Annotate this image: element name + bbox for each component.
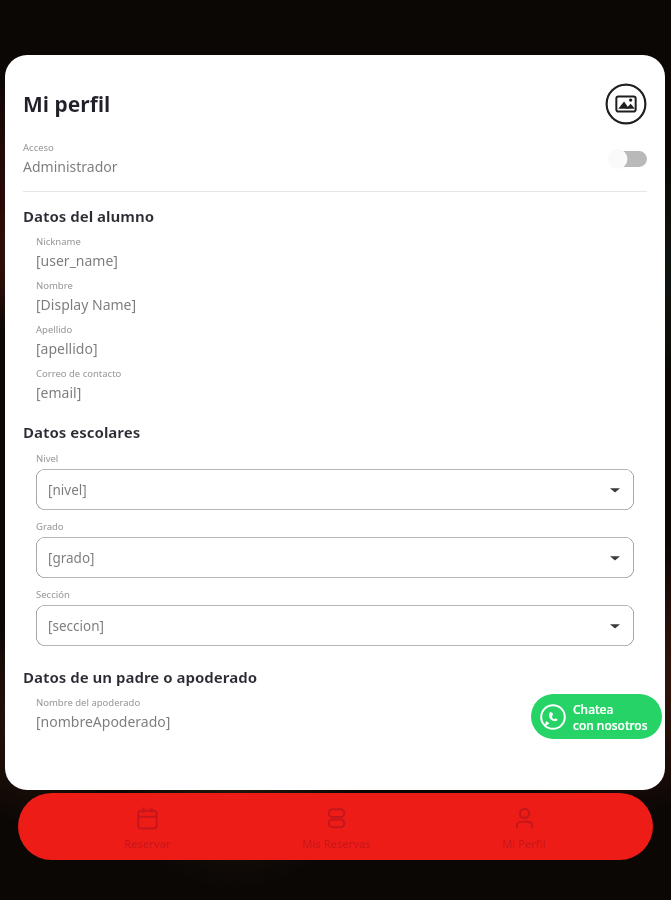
staticText: con nosotros <box>573 717 648 733</box>
button[interactable]: Cambiar foto de perfil <box>605 83 647 125</box>
staticText: Datos del alumno <box>23 206 155 226</box>
button[interactable]: Reservar <box>87 801 207 857</box>
staticText: Nickname <box>36 235 81 248</box>
button[interactable]: Acceso administrador <box>607 148 647 170</box>
staticText: [email] <box>36 383 82 402</box>
button[interactable]: Mi Perfil <box>464 801 584 857</box>
button[interactable]: [nivel] <box>36 469 634 510</box>
staticText: Chatea <box>573 701 614 717</box>
staticText: Apellido <box>36 323 73 336</box>
staticText: Mi Perfil <box>502 836 546 851</box>
staticText: Administrador <box>23 157 118 176</box>
staticText: Acceso <box>23 141 54 154</box>
staticText: Reservar <box>124 836 171 851</box>
staticText: Mi perfil <box>23 90 605 119</box>
staticText: Nivel <box>36 452 59 465</box>
staticText: Nombre del apoderado <box>36 696 141 709</box>
staticText: Datos escolares <box>23 422 141 442</box>
button[interactable]: Mis Reservas <box>276 801 396 857</box>
staticText: [nombreApoderado] <box>36 712 171 731</box>
button[interactable]: [grado] <box>36 537 634 578</box>
staticText: Mis Reservas <box>302 836 371 851</box>
staticText: Nombre <box>36 279 73 292</box>
button[interactable]: [seccion] <box>36 605 634 646</box>
staticText: Datos de un padre o apoderado <box>23 667 258 687</box>
staticText: [Display Name] <box>36 295 137 314</box>
staticText: Correo de contacto <box>36 367 122 380</box>
staticText: [nivel] <box>48 481 87 499</box>
staticText: Grado <box>36 520 64 533</box>
staticText: [apellido] <box>36 339 98 358</box>
staticText: Sección <box>36 588 70 601</box>
staticText: [seccion] <box>48 617 104 635</box>
button[interactable]: Chatea con nosotros por WhatsApp <box>531 694 662 739</box>
staticText: [user_name] <box>36 251 118 270</box>
staticText: [grado] <box>48 549 95 567</box>
